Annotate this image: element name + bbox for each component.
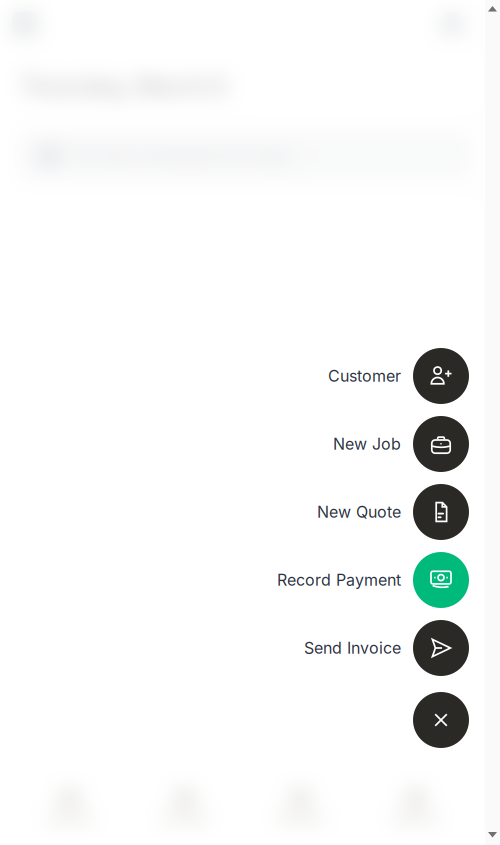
button[interactable]: Scroll up	[487, 0, 497, 12]
button[interactable]: Close menu	[0, 692, 485, 748]
button[interactable]: Send Invoice	[0, 620, 485, 676]
staticText: Customer	[328, 367, 401, 385]
staticText: Record Payment	[277, 571, 401, 589]
staticText: Send Invoice	[304, 639, 401, 657]
button[interactable]: Record Payment	[0, 552, 485, 608]
button[interactable]: Scroll down	[487, 832, 497, 845]
button[interactable]: New Quote	[0, 484, 485, 540]
button[interactable]: Customer	[0, 348, 485, 404]
staticText: New Quote	[317, 503, 401, 521]
button[interactable]: New Job	[0, 416, 485, 472]
staticText: New Job	[333, 435, 401, 453]
